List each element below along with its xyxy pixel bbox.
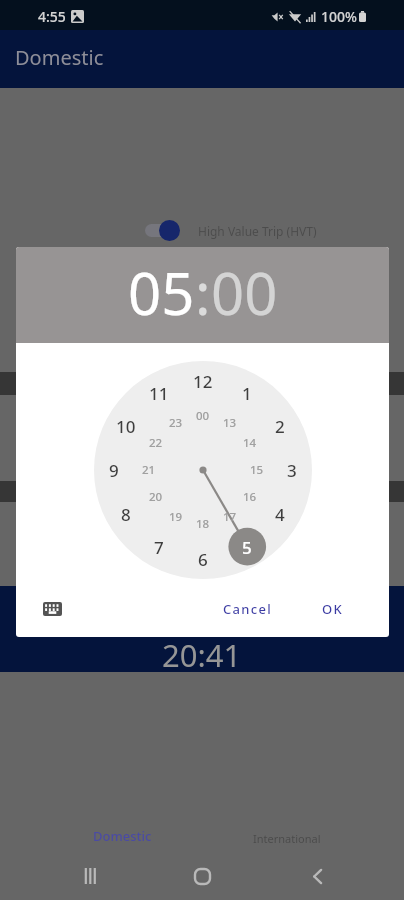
staticText: 100% [321,7,357,26]
button[interactable]: 00 [211,253,278,332]
staticText: High Value Trip (HVT) [198,223,317,239]
button[interactable]: Cancel [215,592,280,626]
staticText: 20 [149,489,163,505]
staticText: Cancel [223,600,272,618]
button[interactable]: Switch to text input [35,592,69,626]
staticText: 4:55 [38,7,66,26]
button[interactable]: OK [314,592,352,626]
staticText: 17 [223,509,237,525]
staticText: 1 [242,382,252,405]
staticText: OK [322,600,344,618]
button[interactable]: International [227,822,347,854]
button[interactable]: High Value Trip (HVT) [145,220,317,241]
button[interactable]: Back [297,856,337,896]
staticText: 9 [109,459,119,482]
button[interactable]: 05 [128,253,195,332]
staticText: 14 [243,435,257,451]
staticText: 19 [169,509,183,525]
staticText: International [253,831,321,846]
staticText: 20:41 [162,634,242,676]
staticText: 23 [169,415,183,431]
staticText: 11 [149,382,169,405]
button[interactable]: Home [182,856,222,896]
staticText: 15 [250,462,264,478]
staticText: 18 [196,516,210,532]
staticText: 2 [275,415,285,438]
button[interactable]: Recents [70,856,110,896]
button[interactable]: Domestic [62,820,182,852]
staticText: 00 [196,408,210,424]
staticText: 5 [242,536,252,559]
staticText: 10 [116,415,136,438]
staticText: Domestic [93,827,152,845]
staticText: 13 [223,415,237,431]
staticText: 8 [121,503,131,526]
staticText: 22 [149,435,163,451]
staticText: 3 [287,459,297,482]
button[interactable] [0,372,404,395]
staticText: 4 [275,503,285,526]
staticText: 21 [142,462,156,478]
staticText: 16 [243,489,257,505]
staticText: 7 [154,536,164,559]
staticText: Domestic [15,44,104,71]
staticText: : [195,253,211,332]
staticText: 12 [193,370,213,393]
button[interactable] [0,481,404,502]
staticText: 6 [198,548,208,571]
